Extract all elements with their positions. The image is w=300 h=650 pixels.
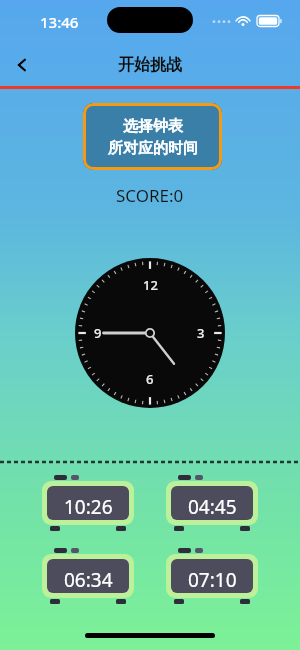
staticText: 04:45 (188, 494, 237, 520)
button[interactable]: Back (0, 44, 44, 86)
staticText: SCORE:0 (116, 184, 184, 207)
staticText: 10:26 (64, 494, 113, 520)
staticText: 13:46 (40, 12, 79, 32)
staticText: 06:34 (64, 567, 113, 593)
button[interactable]: 04:45 (162, 473, 262, 535)
staticText: 6 (146, 370, 154, 388)
button[interactable]: 06:34 (38, 546, 138, 608)
staticText: 选择钟表 所对应的时间 (108, 117, 198, 157)
staticText: 开始挑战 (118, 55, 182, 75)
staticText: 3 (197, 324, 205, 342)
button[interactable]: 选择钟表 所对应的时间 (83, 103, 222, 170)
button[interactable]: 07:10 (162, 546, 262, 608)
staticText: 12 (143, 276, 158, 294)
staticText: 07:10 (188, 567, 237, 593)
staticText: 9 (94, 324, 102, 342)
button[interactable]: 10:26 (38, 473, 138, 535)
